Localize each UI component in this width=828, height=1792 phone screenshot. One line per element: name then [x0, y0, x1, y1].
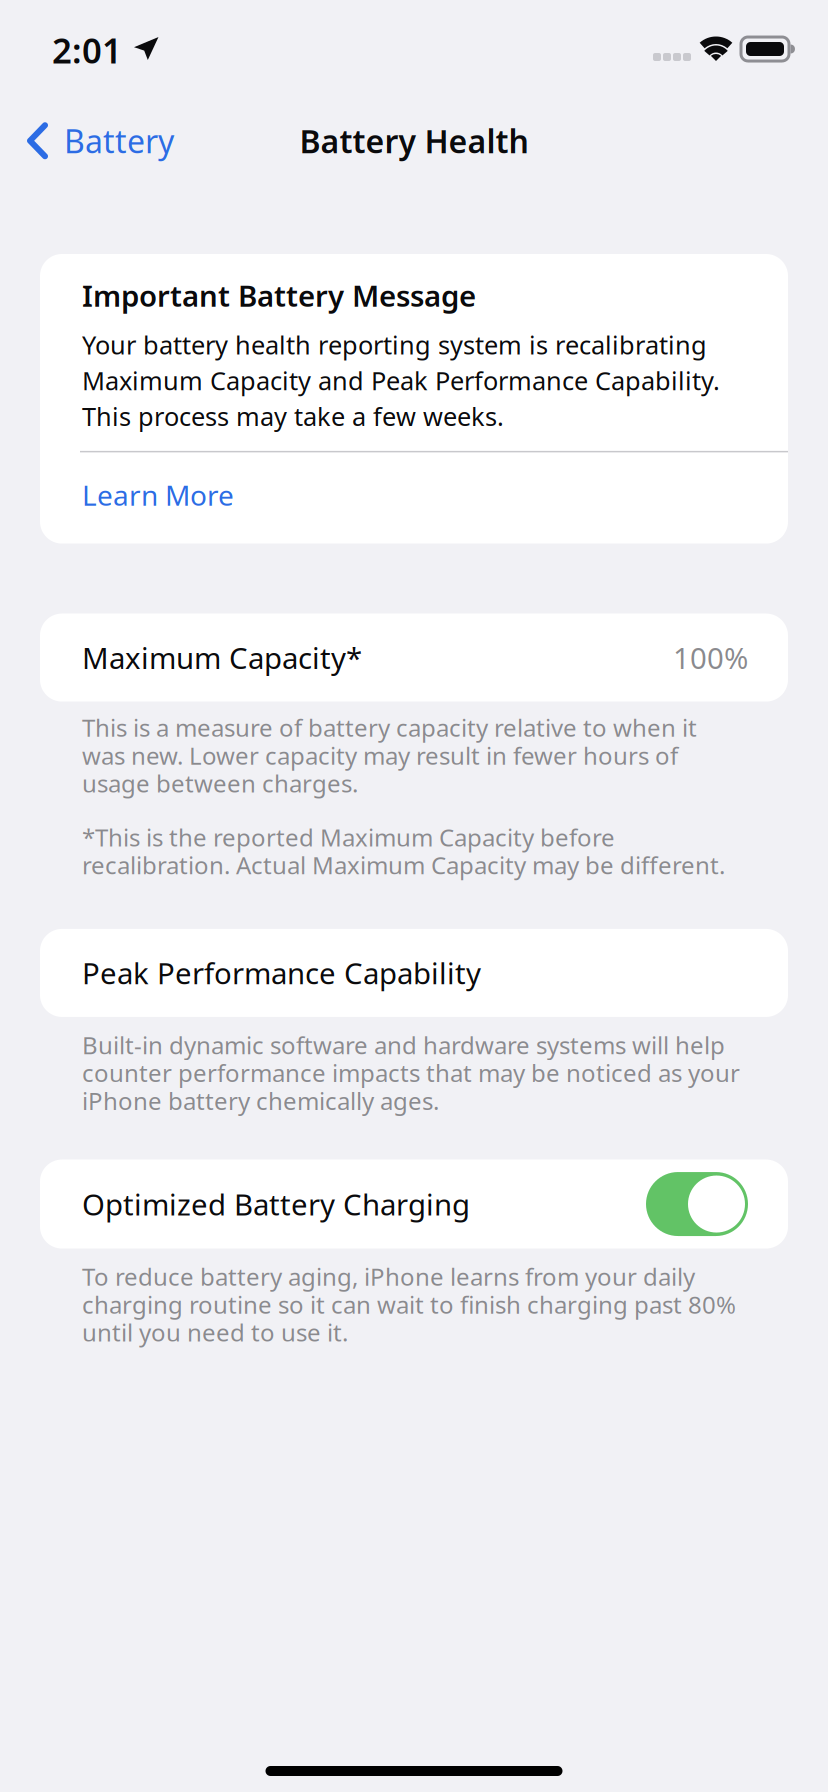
staticText: Battery Health	[299, 119, 528, 162]
button[interactable]: Optimized Battery Charging	[40, 1159, 788, 1248]
button[interactable]: Maximum Capacity*	[40, 614, 788, 702]
staticText: To reduce battery aging, iPhone learns f…	[82, 1260, 736, 1348]
staticText: Learn More	[82, 476, 234, 514]
staticText: Optimized Battery Charging	[82, 1185, 470, 1224]
staticText: Built-in dynamic software and hardware s…	[82, 1029, 740, 1116]
button[interactable]: Peak Performance Capability	[40, 929, 788, 1017]
staticText: This is a measure of battery capacity re…	[82, 712, 697, 799]
staticText: *This is the reported Maximum Capacity b…	[82, 821, 725, 881]
staticText: Battery	[64, 119, 174, 162]
staticText: 2:01	[52, 27, 122, 73]
staticText: Your battery health reporting system is …	[82, 328, 720, 433]
staticText: Maximum Capacity*	[82, 638, 362, 677]
staticText: 100%	[673, 638, 748, 677]
button[interactable]: Battery	[0, 107, 192, 174]
staticText: Peak Performance Capability	[82, 953, 481, 992]
button[interactable]: Learn More	[82, 452, 788, 544]
staticText: Important Battery Message	[82, 276, 476, 315]
